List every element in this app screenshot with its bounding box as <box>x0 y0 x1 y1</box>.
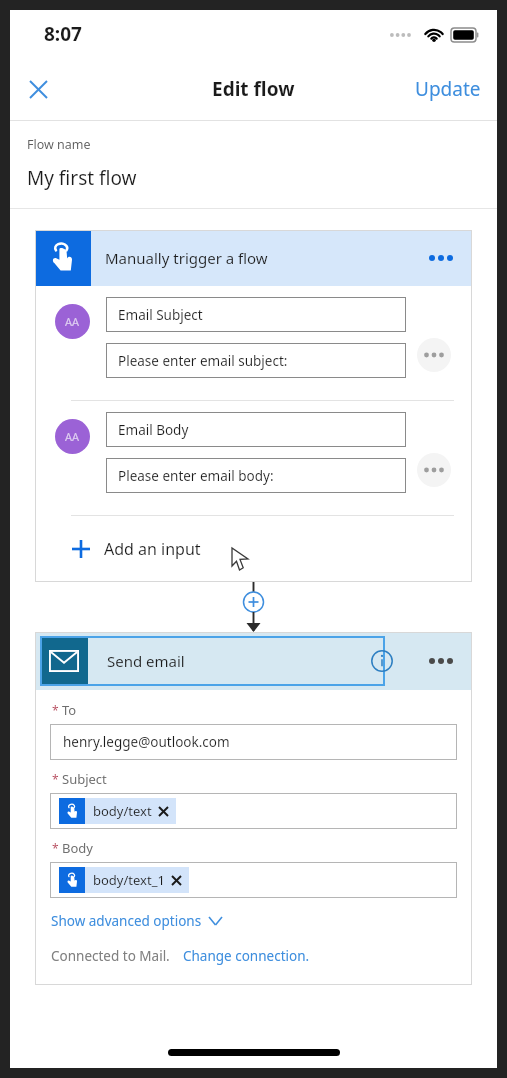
button[interactable]: Information <box>366 645 398 677</box>
staticText: Update <box>415 76 481 102</box>
staticText: Change connection. <box>183 947 310 965</box>
staticText: body/text_1 <box>93 871 165 889</box>
staticText: 8:07 <box>44 21 82 47</box>
button[interactable]: body/text_1 <box>50 862 457 898</box>
staticText: AA <box>65 429 80 444</box>
button[interactable]: Email Body <box>106 412 406 447</box>
button[interactable]: Close <box>16 67 60 111</box>
staticText: Edit flow <box>212 76 295 102</box>
button[interactable]: Change connection. <box>183 947 310 965</box>
staticText: Connected to Mail. <box>51 947 170 965</box>
button[interactable]: Field options <box>417 338 451 372</box>
staticText: Body <box>62 839 93 857</box>
staticText: body/text <box>93 802 152 820</box>
staticText: To <box>62 701 77 719</box>
staticText: Email Subject <box>118 306 203 324</box>
staticText: Please enter email subject: <box>118 352 288 370</box>
button[interactable]: Field options <box>417 453 451 487</box>
button[interactable]: Update <box>409 68 487 110</box>
button[interactable]: Manually trigger a flow <box>35 230 472 286</box>
button[interactable]: body/text <box>50 793 457 829</box>
button[interactable]: henry.legge@outlook.com <box>50 724 457 760</box>
staticText: * <box>52 771 59 787</box>
staticText: Subject <box>62 770 107 788</box>
staticText: Send email <box>107 651 185 671</box>
button[interactable]: Send email <box>40 636 385 686</box>
staticText: Manually trigger a flow <box>105 248 268 268</box>
staticText: My first flow <box>27 165 137 191</box>
button[interactable]: More options <box>424 241 458 275</box>
button[interactable]: Email Subject <box>106 297 406 332</box>
staticText: Please enter email body: <box>118 467 274 485</box>
staticText: * <box>52 840 59 856</box>
staticText: henry.legge@outlook.com <box>63 733 230 751</box>
button[interactable]: Please enter email subject: <box>106 343 406 378</box>
button[interactable]: Show advanced options <box>51 912 222 930</box>
button[interactable]: Add an input <box>35 516 472 582</box>
staticText: Email Body <box>118 421 189 439</box>
staticText: * <box>52 702 59 718</box>
staticText: Flow name <box>27 136 91 153</box>
button[interactable]: Please enter email body: <box>106 458 406 493</box>
staticText: Add an input <box>104 538 201 560</box>
staticText: AA <box>65 314 80 329</box>
staticText: Show advanced options <box>51 912 202 930</box>
button[interactable]: More options <box>424 644 458 678</box>
